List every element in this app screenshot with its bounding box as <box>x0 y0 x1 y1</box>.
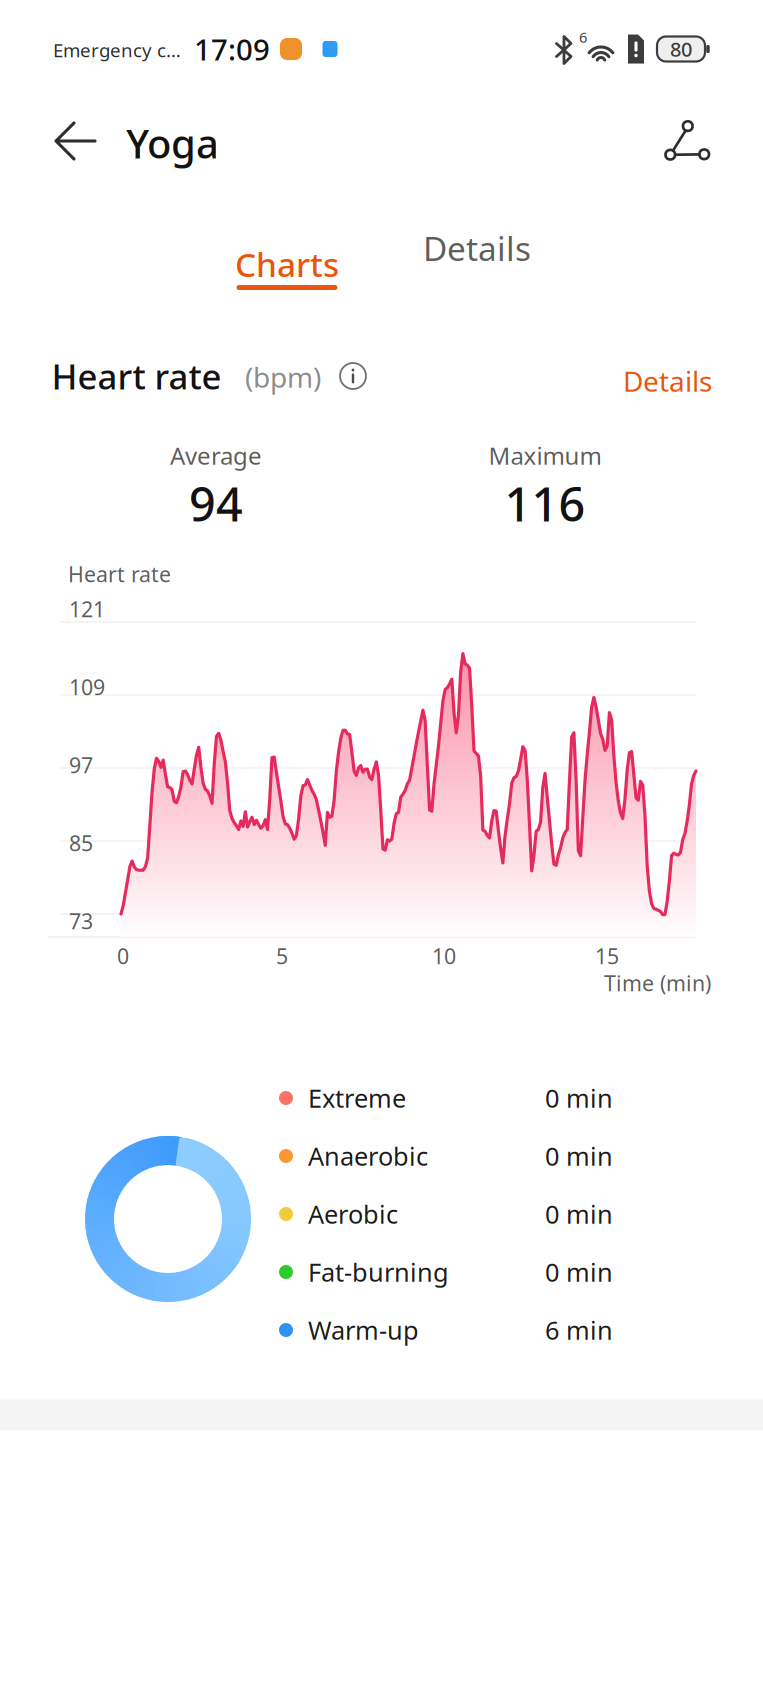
staticText: 6 min <box>545 1313 613 1347</box>
staticText: Details <box>623 362 712 400</box>
staticText: Extreme <box>308 1081 406 1115</box>
staticText: Anaerobic <box>308 1139 428 1173</box>
staticText: Fat-burning <box>308 1255 449 1289</box>
staticText: 15 <box>595 942 619 970</box>
staticText: Warm-up <box>308 1313 419 1347</box>
staticText: 73 <box>69 907 93 935</box>
staticText: Time (min) <box>604 969 711 997</box>
staticText: 0 min <box>545 1197 613 1231</box>
staticText: 17:09 <box>194 29 270 68</box>
staticText: 97 <box>69 751 93 779</box>
button[interactable]: Details <box>572 352 712 410</box>
staticText: 80 <box>670 36 692 62</box>
staticText: Emergency c… <box>53 38 181 62</box>
staticText: 116 <box>504 472 585 534</box>
button[interactable]: Charts <box>207 224 367 310</box>
staticText: Details <box>423 226 531 270</box>
staticText: 121 <box>69 595 105 623</box>
staticText: 0 min <box>545 1081 613 1115</box>
button[interactable]: Share <box>649 102 725 178</box>
staticText: Charts <box>235 242 339 286</box>
staticText: 109 <box>69 673 105 701</box>
staticText: 0 <box>117 942 129 970</box>
staticText: Aerobic <box>308 1197 398 1231</box>
button[interactable]: Back <box>37 103 113 179</box>
staticText: (bpm) <box>245 358 321 396</box>
staticText: Heart rate <box>68 560 171 588</box>
staticText: Average <box>170 440 262 471</box>
button[interactable]: Details <box>397 226 557 312</box>
staticText: 85 <box>69 829 93 857</box>
staticText: 10 <box>432 942 456 970</box>
staticText: 0 min <box>545 1255 613 1289</box>
staticText: 6 <box>579 27 587 47</box>
staticText: 0 min <box>545 1139 613 1173</box>
staticText: 94 <box>189 472 243 534</box>
staticText: Maximum <box>488 440 601 471</box>
staticText: Heart rate <box>51 353 221 399</box>
staticText: 5 <box>276 942 288 970</box>
staticText: Yoga <box>126 116 219 169</box>
